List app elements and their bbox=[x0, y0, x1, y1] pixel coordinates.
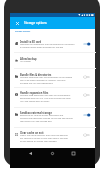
button[interactable]: Clear cache on exit bbox=[10, 131, 95, 147]
staticText: increase the APK size significantly bbox=[20, 82, 53, 85]
button[interactable]: Close bbox=[12, 17, 23, 29]
button[interactable]: Handle expansion files bbox=[10, 91, 95, 108]
staticText: Clears the cache directory each time the… bbox=[20, 134, 68, 137]
button[interactable]: Clear cache on exit bbox=[82, 132, 92, 137]
staticText: tion to be made available at runtime. Th… bbox=[20, 79, 66, 82]
staticText: Allow backup bbox=[20, 57, 37, 60]
button[interactable]: Handle expansion files bbox=[82, 92, 92, 97]
staticText: ion session is closed so that user data … bbox=[20, 137, 68, 140]
button[interactable]: Bundle files & directories bbox=[10, 73, 95, 88]
staticText: al storage device when available for the… bbox=[20, 46, 64, 49]
staticText: Includes additional files and directorie… bbox=[20, 76, 73, 79]
button[interactable]: Recent apps bbox=[69, 149, 78, 158]
staticText: generated with the APK. This may increas… bbox=[20, 97, 71, 100]
button[interactable]: Bundle files & directories bbox=[82, 74, 92, 79]
button[interactable]: Sandbox external storage bbox=[10, 111, 95, 128]
staticText: Handle expansion files bbox=[20, 91, 49, 94]
staticText: Clear cache on exit bbox=[20, 131, 44, 134]
button[interactable]: Home bbox=[48, 149, 57, 158]
staticText: Storage options bbox=[24, 21, 47, 25]
staticText: isolated and effectively scoped so that … bbox=[20, 117, 73, 120]
button[interactable]: Install to SD card bbox=[82, 41, 92, 46]
staticText: Reference SD card file access operations… bbox=[20, 114, 64, 117]
button[interactable]: Install to SD card bbox=[10, 40, 95, 53]
button[interactable]: Sandbox external storage bbox=[82, 112, 92, 117]
staticText: Sandbox external storage bbox=[20, 111, 52, 114]
button[interactable]: Allow backup bbox=[10, 57, 95, 69]
staticText: Install to SD card bbox=[20, 40, 42, 43]
staticText: No change bbox=[20, 60, 31, 63]
button[interactable]: Back bbox=[26, 149, 35, 158]
staticText: on the device for longer than needed bbox=[20, 140, 57, 143]
staticText: read history on app storage files bbox=[20, 120, 52, 123]
staticText: Storage options bbox=[15, 30, 31, 33]
staticText: Bundle files & directories bbox=[20, 73, 52, 76]
staticText: Includes OBB expansion files that are au… bbox=[20, 94, 71, 97]
staticText: Indicates the application may be install… bbox=[20, 43, 75, 46]
staticText: APK size significantly at install bbox=[20, 100, 50, 103]
